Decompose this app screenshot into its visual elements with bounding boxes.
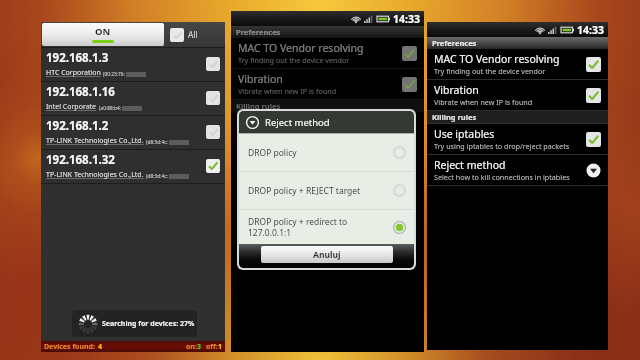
staticText: (d8:5d:4c: (146, 139, 168, 146)
staticText: 192.168.1.16 (46, 84, 115, 100)
staticText: (a0:88:b4: (99, 105, 121, 112)
button[interactable]: 192.168.1.16 (41, 81, 225, 115)
button[interactable]: Vibration (427, 80, 608, 110)
staticText: Reject method (265, 116, 330, 129)
staticText: Vibration (238, 72, 283, 86)
staticText: 14:33 (577, 23, 604, 37)
button[interactable]: ON (42, 23, 164, 46)
button[interactable]: Reject method (427, 155, 608, 185)
button[interactable]: Select device (206, 57, 220, 71)
staticText: TP-LINK Technologies Co.,Ltd. (46, 136, 144, 146)
staticText: 192.168.1.2 (46, 118, 109, 134)
staticText: Vibrate when new IP is found (434, 97, 533, 107)
button[interactable]: MAC TO Vendor resolving (231, 38, 424, 68)
staticText: (d8:5d:4c: (146, 173, 168, 180)
button[interactable]: 192.168.1.3 (41, 47, 225, 81)
staticText: 3 (197, 342, 202, 352)
staticText: TP-LINK Technologies Co.,Ltd. (46, 170, 144, 180)
staticText: Preferences (432, 38, 477, 48)
staticText: Try finding out the device vendor (434, 66, 546, 76)
staticText: 1 (218, 342, 223, 352)
staticText: Searching for devices: 27% (102, 319, 195, 329)
staticText: 192.168.1.3 (46, 50, 109, 66)
button[interactable]: DROP policy (239, 134, 414, 171)
button[interactable]: DROP policy + redirect to 127.0.0.1:1 (239, 210, 414, 244)
staticText: DROP policy + redirect to 127.0.0.1:1 (248, 216, 393, 238)
staticText: 4 (98, 342, 103, 352)
button[interactable]: Select device (206, 91, 220, 105)
staticText: Try finding out the device vendor (238, 55, 350, 65)
staticText: Intel Corporate (46, 102, 97, 112)
button[interactable]: Vibration (231, 69, 424, 99)
button[interactable]: Select device (206, 125, 220, 139)
staticText: ON (95, 25, 111, 38)
staticText: Anuluj (313, 249, 341, 261)
staticText: MAC TO Vendor resolving (238, 41, 364, 55)
staticText: Devices found: (44, 342, 95, 352)
staticText: Reject method (434, 158, 506, 172)
staticText: 14:33 (393, 12, 420, 26)
button[interactable]: DROP policy + REJECT target (239, 172, 414, 209)
button[interactable]: 192.168.1.32 (41, 149, 225, 183)
button[interactable]: 192.168.1.2 (41, 115, 225, 149)
staticText: DROP policy + REJECT target (248, 185, 393, 197)
staticText: 192.168.1.32 (46, 152, 115, 168)
button[interactable]: Select device (206, 159, 220, 173)
staticText: Vibrate when new IP is found (238, 86, 337, 96)
staticText: MAC TO Vendor resolving (434, 52, 560, 66)
staticText: on: (186, 342, 197, 352)
staticText: Vibration (434, 83, 479, 97)
staticText: (00:23:76: (103, 71, 125, 78)
staticText: Use iptables (434, 127, 495, 141)
staticText: DROP policy (248, 147, 393, 159)
button[interactable]: Use iptables (427, 124, 608, 154)
button[interactable]: All (170, 28, 198, 42)
staticText: off: (206, 342, 218, 352)
staticText: Select how to kill connections in iptabl… (434, 172, 570, 182)
staticText: Try using iptables to drop/reject packet… (434, 141, 570, 151)
staticText: HTC Corporation (46, 68, 101, 78)
button[interactable]: MAC TO Vendor resolving (427, 49, 608, 79)
staticText: Preferences (236, 27, 281, 37)
button[interactable]: Anuluj (261, 246, 393, 263)
staticText: Killing rules (236, 101, 281, 111)
other: Open reject method (586, 163, 601, 178)
staticText: Killing rules (432, 112, 477, 122)
staticText: All (188, 29, 198, 41)
